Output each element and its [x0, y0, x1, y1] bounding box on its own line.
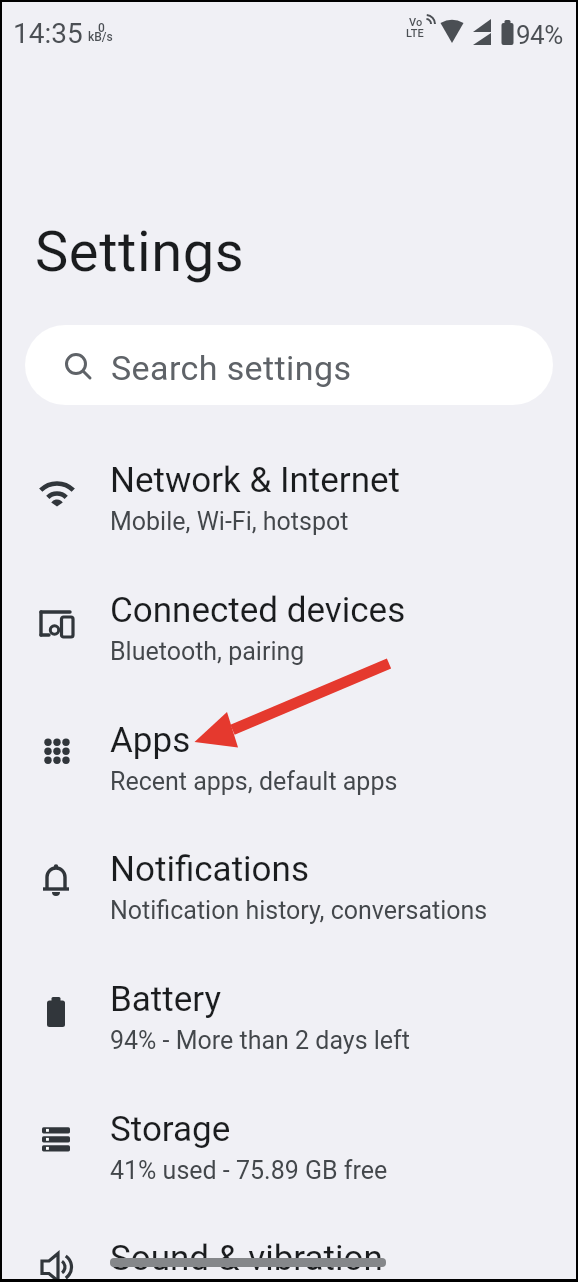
staticText: Notifications: [110, 849, 309, 890]
staticText: Battery: [110, 979, 222, 1020]
staticText: Notification history, conversations: [110, 896, 488, 925]
staticText: Apps: [110, 720, 191, 761]
staticText: kB/s: [88, 30, 113, 44]
staticText: Sound & vibration: [110, 1238, 383, 1279]
staticText: 94%: [516, 20, 563, 50]
button[interactable]: Sound & vibration: [2, 1218, 576, 1279]
button[interactable]: Battery: [2, 959, 576, 1089]
staticText: Bluetooth, pairing: [110, 637, 305, 666]
button[interactable]: Network & Internet: [2, 440, 576, 570]
button[interactable]: Notifications: [2, 829, 576, 959]
staticText: Storage: [110, 1109, 231, 1150]
staticText: LTE: [406, 27, 424, 40]
staticText: 14:35: [13, 17, 83, 50]
staticText: 0: [98, 21, 105, 35]
staticText: Search settings: [111, 348, 352, 388]
staticText: 41% used - 75.89 GB free: [110, 1156, 388, 1185]
staticText: Recent apps, default apps: [110, 767, 398, 796]
staticText: Connected devices: [110, 590, 406, 631]
staticText: Vo: [409, 16, 423, 29]
staticText: Network & Internet: [110, 460, 401, 501]
button[interactable]: Apps: [2, 700, 576, 830]
button[interactable]: Search settings: [25, 325, 553, 405]
staticText: Settings: [35, 219, 245, 285]
staticText: Mobile, Wi-Fi, hotspot: [110, 507, 349, 536]
staticText: 94% - More than 2 days left: [110, 1026, 410, 1055]
button[interactable]: Storage: [2, 1089, 576, 1219]
button[interactable]: Connected devices: [2, 570, 576, 700]
